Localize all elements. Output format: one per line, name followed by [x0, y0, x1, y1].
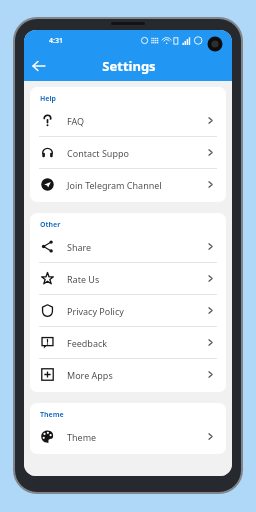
staticText: Join Telegram Channel: [67, 179, 162, 191]
button[interactable]: Privacy Policy: [30, 295, 226, 326]
staticText: Privacy Policy: [67, 305, 124, 317]
staticText: FAQ: [67, 115, 85, 127]
button[interactable]: Back: [24, 51, 54, 81]
staticText: More Apps: [67, 369, 113, 381]
staticText: Rate Us: [67, 273, 100, 285]
button[interactable]: Rate Us: [30, 263, 226, 294]
staticText: Settings: [40, 57, 218, 75]
staticText: Other: [40, 220, 61, 230]
staticText: Feedback: [67, 337, 108, 349]
staticText: Theme: [40, 410, 64, 420]
button[interactable]: Feedback: [30, 327, 226, 358]
button[interactable]: Join Telegram Channel: [30, 169, 226, 200]
button[interactable]: More Apps: [30, 359, 226, 390]
button[interactable]: Contact Suppo: [30, 137, 226, 168]
staticText: Share: [67, 241, 92, 253]
button[interactable]: Share: [30, 231, 226, 262]
button[interactable]: FAQ: [30, 105, 226, 136]
staticText: Contact Suppo: [67, 147, 129, 159]
staticText: 4:31: [49, 36, 63, 46]
button[interactable]: Theme: [30, 421, 226, 452]
staticText: Help: [40, 94, 57, 104]
staticText: Theme: [67, 431, 97, 443]
